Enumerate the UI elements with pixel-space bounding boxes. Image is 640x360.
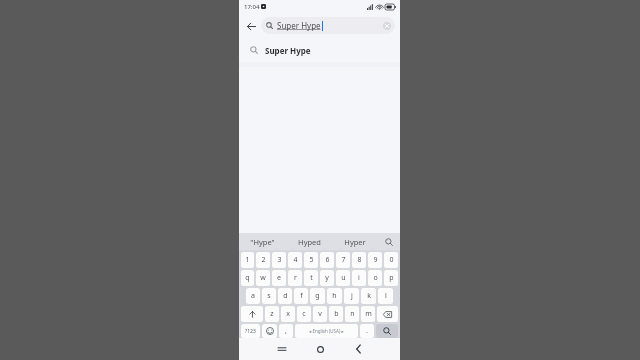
button[interactable]: e — [272, 270, 286, 286]
button[interactable]: d — [278, 288, 292, 304]
staticText: t — [310, 273, 313, 283]
staticText: r — [294, 273, 297, 283]
button[interactable]: x — [281, 306, 295, 322]
button[interactable]: 7 — [336, 252, 350, 268]
staticText: d — [283, 291, 288, 301]
button[interactable]: k — [361, 288, 376, 304]
button[interactable]: n — [345, 306, 359, 322]
staticText: p — [389, 273, 394, 283]
staticText: 3 — [277, 255, 282, 265]
button[interactable]: m — [361, 306, 375, 322]
staticText: z — [270, 309, 274, 319]
staticText: ◂ English (USA) ▸ — [309, 328, 344, 334]
staticText: j — [351, 291, 353, 301]
staticText: y — [325, 273, 329, 283]
button[interactable]: Super Hype — [239, 38, 400, 62]
button[interactable]: 1 — [241, 252, 254, 268]
staticText: k — [367, 291, 371, 301]
button[interactable]: 0 — [384, 252, 398, 268]
button[interactable]: y — [320, 270, 334, 286]
staticText: h — [332, 291, 337, 301]
button[interactable]: Hyper — [332, 233, 378, 250]
button[interactable]: 3 — [272, 252, 286, 268]
staticText: ?123 — [245, 328, 256, 335]
staticText: e — [277, 273, 281, 283]
button[interactable]: t — [304, 270, 318, 286]
button[interactable]: Search — [376, 324, 398, 338]
button[interactable]: 5 — [304, 252, 318, 268]
staticText: w — [260, 273, 266, 283]
staticText: 0 — [389, 255, 394, 265]
button[interactable]: 2 — [256, 252, 270, 268]
button[interactable]: s — [262, 288, 276, 304]
button[interactable]: j — [344, 288, 359, 304]
button[interactable]: Hyped — [286, 233, 332, 250]
staticText: Super Hype — [265, 45, 311, 56]
button[interactable]: Space — [295, 324, 358, 338]
button[interactable]: a — [246, 288, 260, 304]
staticText: 9 — [373, 255, 378, 265]
button[interactable]: Back — [339, 338, 377, 360]
button[interactable]: Shift — [241, 306, 263, 322]
button[interactable]: b — [329, 306, 343, 322]
staticText: Super Hype — [277, 20, 321, 31]
button[interactable]: q — [241, 270, 254, 286]
staticText: i — [358, 273, 360, 283]
button[interactable]: p — [384, 270, 398, 286]
button[interactable]: o — [368, 270, 382, 286]
staticText: a — [251, 291, 255, 301]
button[interactable]: u — [336, 270, 350, 286]
button[interactable]: w — [256, 270, 270, 286]
button[interactable]: r — [288, 270, 302, 286]
button[interactable]: z — [265, 306, 279, 322]
button[interactable]: v — [313, 306, 327, 322]
staticText: 8 — [357, 255, 362, 265]
button[interactable]: Backspace — [377, 306, 398, 322]
staticText: 7 — [341, 255, 346, 265]
button[interactable]: Emoji — [262, 324, 277, 338]
button[interactable]: 9 — [368, 252, 382, 268]
button[interactable]: Recents — [263, 338, 301, 360]
staticText: 4 — [293, 255, 298, 265]
button[interactable]: 4 — [288, 252, 302, 268]
button[interactable]: Super Hype — [261, 17, 395, 34]
staticText: g — [315, 291, 320, 301]
button[interactable]: h — [327, 288, 342, 304]
button[interactable]: Home — [301, 338, 339, 360]
button[interactable]: "Hype" — [239, 233, 286, 250]
button[interactable]: ?123 — [241, 324, 260, 338]
staticText: 17:04 — [244, 3, 260, 11]
button[interactable]: i — [352, 270, 366, 286]
button[interactable]: Search keyboard — [378, 233, 400, 250]
staticText: Hyper — [344, 237, 366, 247]
staticText: x — [286, 309, 290, 319]
button[interactable]: l — [378, 288, 393, 304]
staticText: c — [302, 309, 306, 319]
staticText: 5 — [309, 255, 314, 265]
button[interactable]: g — [310, 288, 325, 304]
button[interactable]: 6 — [320, 252, 334, 268]
staticText: u — [341, 273, 346, 283]
staticText: f — [300, 291, 303, 301]
button[interactable]: . — [360, 324, 374, 338]
staticText: o — [373, 273, 378, 283]
staticText: s — [267, 291, 271, 301]
button[interactable]: f — [294, 288, 308, 304]
staticText: 2 — [261, 255, 266, 265]
button[interactable]: 8 — [352, 252, 366, 268]
button[interactable]: , — [279, 324, 293, 338]
staticText: l — [385, 291, 387, 301]
button[interactable]: Clear — [383, 22, 391, 30]
button[interactable]: c — [297, 306, 311, 322]
staticText: "Hype" — [250, 237, 275, 247]
staticText: n — [350, 309, 355, 319]
staticText: 1 — [245, 255, 250, 265]
button[interactable]: Back — [242, 17, 260, 35]
staticText: b — [334, 309, 339, 319]
staticText: 6 — [325, 255, 330, 265]
staticText: m — [365, 309, 372, 319]
staticText: . — [366, 326, 368, 336]
staticText: v — [318, 309, 322, 319]
staticText: , — [285, 326, 287, 336]
staticText: q — [245, 273, 250, 283]
